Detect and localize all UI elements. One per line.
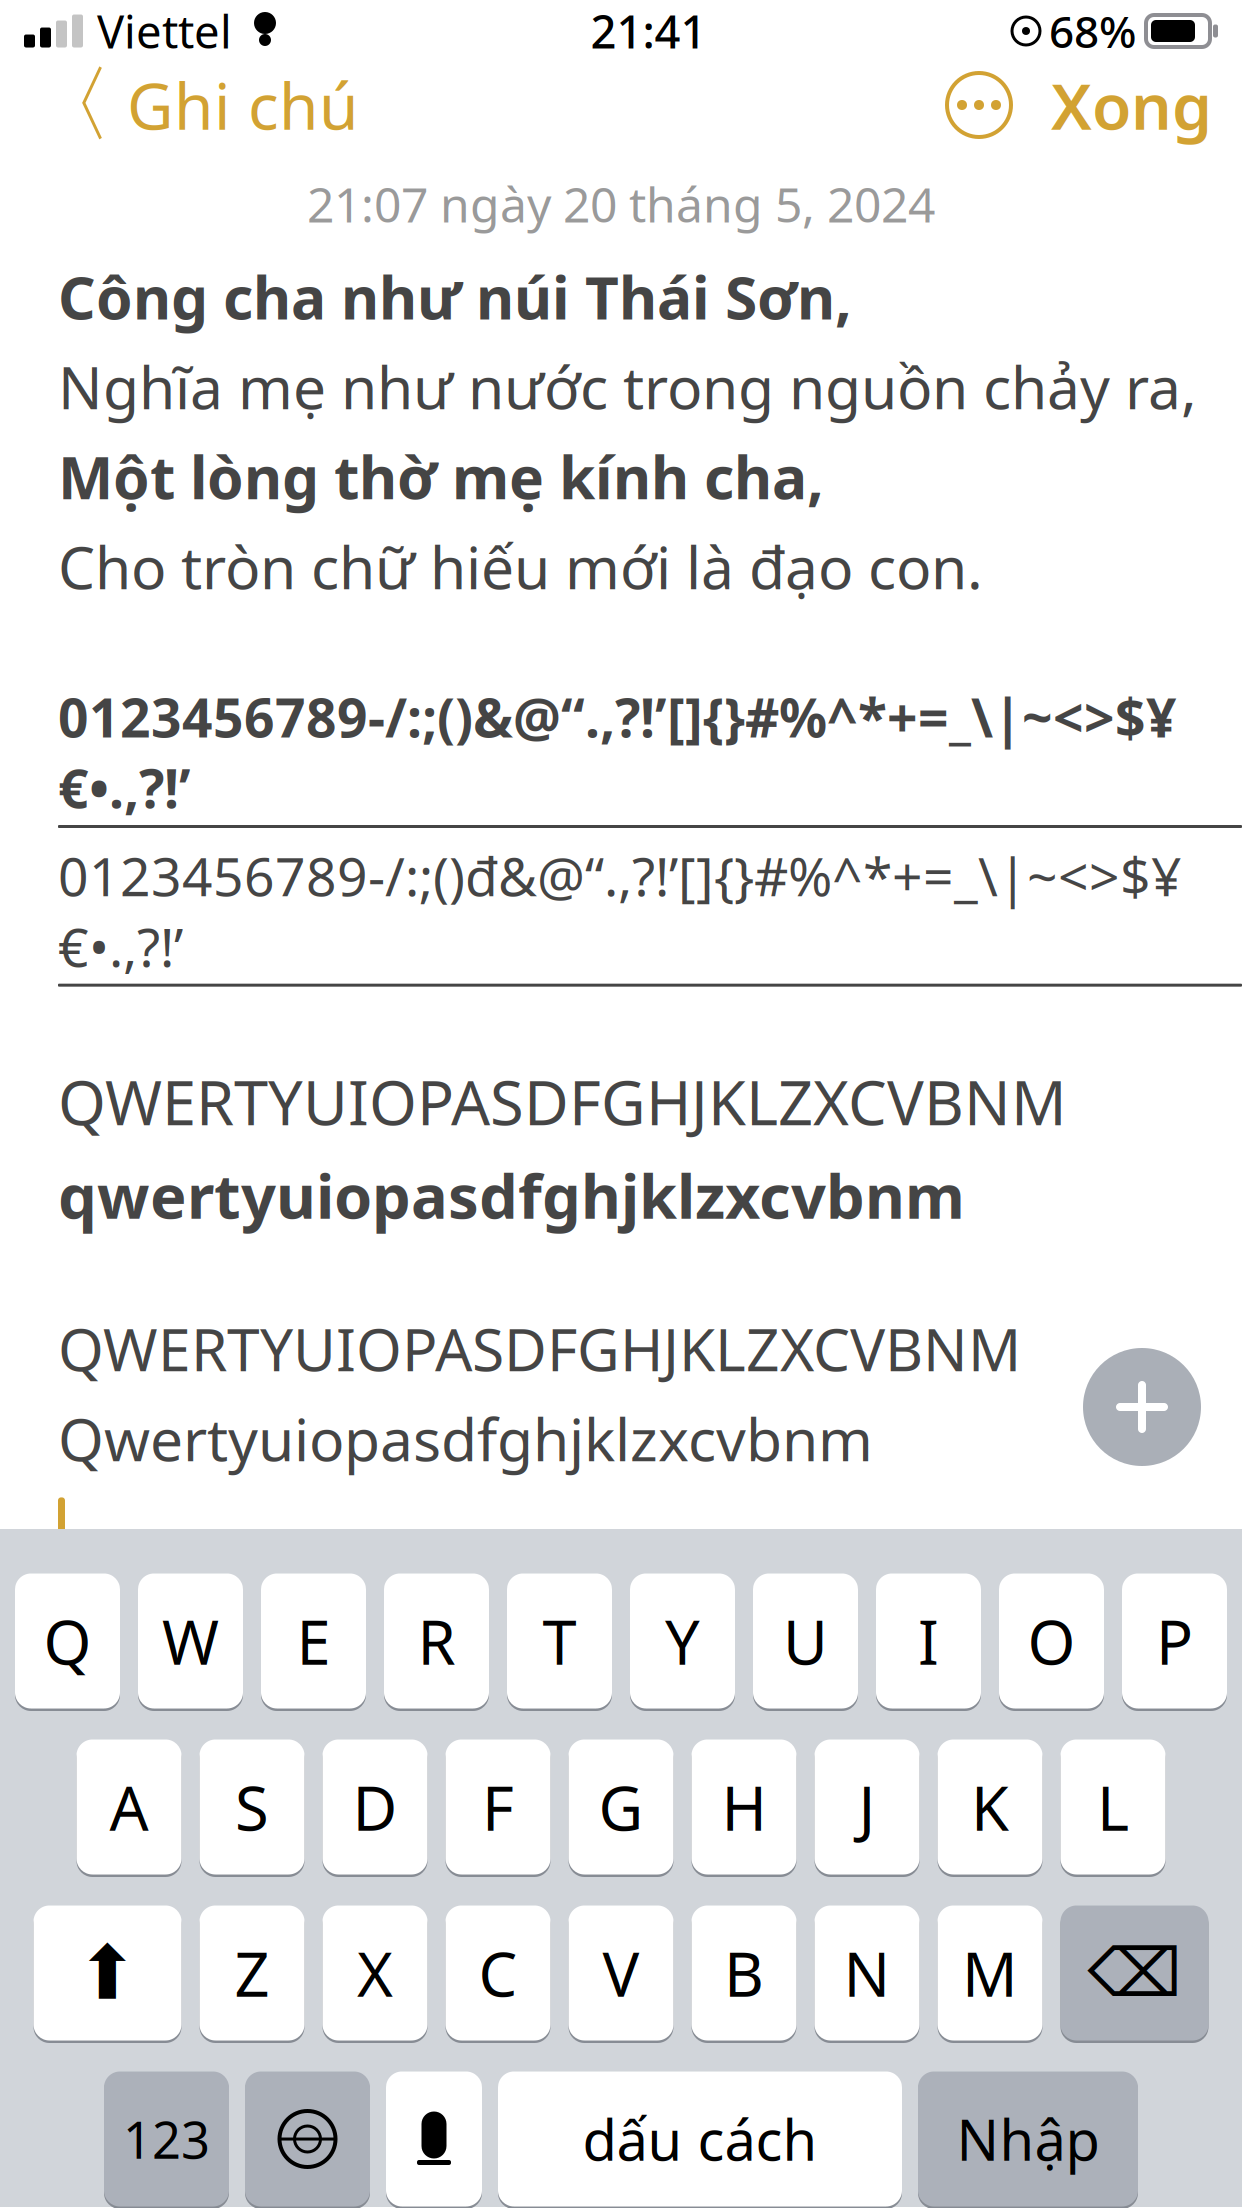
- staticText: Nghĩa mẹ như nước trong nguồn chảy ra,: [58, 348, 1197, 425]
- button[interactable]: W: [138, 1571, 243, 1711]
- button[interactable]: L: [1060, 1737, 1165, 1877]
- button[interactable]: Next keyboard: [245, 2069, 370, 2208]
- button[interactable]: S: [199, 1737, 304, 1877]
- staticText: 21:07 ngày 20 tháng 5, 2024: [307, 172, 935, 236]
- staticText: R: [417, 1600, 455, 1682]
- staticText: Xong: [1051, 62, 1212, 147]
- staticText: Y: [665, 1600, 700, 1682]
- button[interactable]: P: [1122, 1571, 1227, 1711]
- button[interactable]: E: [261, 1571, 366, 1711]
- button[interactable]: Xong: [1015, 52, 1242, 157]
- staticText: Viettel: [97, 1, 232, 61]
- staticText: H: [721, 1766, 766, 1848]
- button[interactable]: C: [445, 1903, 550, 2043]
- staticText: qwertyuiopasdfghjklzxcvbnm: [58, 1154, 965, 1235]
- staticText: G: [598, 1766, 643, 1848]
- button[interactable]: Dictation: [386, 2069, 482, 2208]
- staticText: M: [962, 1932, 1018, 2014]
- button[interactable]: R: [384, 1571, 489, 1711]
- staticText: 123: [123, 2105, 210, 2173]
- button[interactable]: U: [753, 1571, 858, 1711]
- button[interactable]: Numbers and symbols: [104, 2069, 229, 2208]
- button[interactable]: G: [568, 1737, 673, 1877]
- staticText: Một lòng thờ mẹ kính cha,: [58, 438, 824, 515]
- staticText: U: [783, 1600, 828, 1682]
- staticText: Qwertyuiopasdfghjklzxcvbnm: [58, 1399, 873, 1477]
- staticText: C: [478, 1932, 517, 2014]
- staticText: Nhập: [956, 2102, 1099, 2176]
- staticText: D: [352, 1766, 397, 1848]
- button[interactable]: O: [999, 1571, 1104, 1711]
- staticText: 0123456789-/:;()&@“.,?!’[]{}#%^*+=_\|~<>…: [58, 681, 1177, 823]
- staticText: N: [843, 1932, 890, 2014]
- staticText: 0123456789-/:;()đ&@“.,?!’[]{}#%^*+=_\|~<…: [58, 840, 1182, 982]
- button[interactable]: Space: [498, 2069, 902, 2208]
- button[interactable]: Y: [630, 1571, 735, 1711]
- button[interactable]: H: [691, 1737, 796, 1877]
- button[interactable]: Q: [15, 1571, 120, 1711]
- button[interactable]: V: [568, 1903, 673, 2043]
- staticText: O: [1027, 1600, 1075, 1682]
- button[interactable]: B: [691, 1903, 796, 2043]
- staticText: A: [109, 1766, 148, 1848]
- staticText: I: [918, 1600, 939, 1682]
- staticText: F: [482, 1766, 514, 1848]
- button[interactable]: Add attachment: [1083, 1348, 1201, 1466]
- button[interactable]: 〈: [0, 44, 359, 166]
- staticText: W: [162, 1600, 219, 1682]
- staticText: L: [1097, 1766, 1129, 1848]
- button[interactable]: X: [322, 1903, 427, 2043]
- button[interactable]: J: [814, 1737, 919, 1877]
- staticText: B: [724, 1932, 764, 2014]
- button[interactable]: I: [876, 1571, 981, 1711]
- staticText: Z: [234, 1932, 269, 2014]
- button[interactable]: More options: [943, 69, 1015, 141]
- button[interactable]: A: [76, 1737, 181, 1877]
- staticText: QWERTYUIOPASDFGHJKLZXCVBNM: [58, 1061, 1067, 1142]
- staticText: J: [858, 1766, 875, 1848]
- staticText: 68%: [1049, 2, 1136, 60]
- staticText: E: [296, 1600, 330, 1682]
- staticText: QWERTYUIOPASDFGHJKLZXCVBNM: [58, 1310, 1021, 1387]
- staticText: P: [1156, 1600, 1193, 1682]
- button[interactable]: Return: [918, 2069, 1138, 2208]
- staticText: Cho tròn chữ hiếu mới là đạo con.: [58, 527, 983, 605]
- staticText: ⌫: [1087, 1935, 1181, 2011]
- button[interactable]: F: [445, 1737, 550, 1877]
- button[interactable]: N: [814, 1903, 919, 2043]
- staticText: Ghi chú: [127, 62, 359, 147]
- button[interactable]: K: [937, 1737, 1042, 1877]
- staticText: S: [235, 1766, 269, 1848]
- staticText: T: [542, 1600, 576, 1682]
- button[interactable]: Z: [199, 1903, 304, 2043]
- staticText: V: [602, 1932, 639, 2014]
- button[interactable]: M: [937, 1903, 1042, 2043]
- staticText: 〈: [30, 54, 113, 156]
- staticText: ⬆: [76, 1931, 139, 2015]
- button[interactable]: D: [322, 1737, 427, 1877]
- staticText: Công cha như núi Thái Sơn,: [58, 258, 852, 336]
- staticText: K: [971, 1766, 1009, 1848]
- staticText: X: [357, 1932, 393, 2014]
- staticText: dấu cách: [582, 2102, 817, 2176]
- button[interactable]: Delete: [1060, 1903, 1208, 2043]
- staticText: 21:41: [590, 1, 706, 61]
- button[interactable]: Shift: [33, 1903, 181, 2043]
- staticText: Q: [43, 1600, 91, 1682]
- button[interactable]: T: [507, 1571, 612, 1711]
